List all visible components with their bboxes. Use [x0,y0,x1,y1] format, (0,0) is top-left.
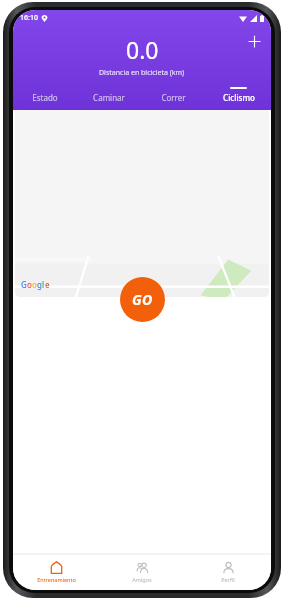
staticText: G [21,279,27,290]
staticText: Distancia en bicicleta (km) [99,68,185,78]
staticText: Estado [32,92,58,103]
other: Perfil [222,561,235,574]
button[interactable]: Estado [13,84,77,110]
staticText: Ciclismo [223,92,255,103]
staticText: Entrenamiento [37,576,76,583]
button[interactable]: Ciclismo [206,84,271,110]
button[interactable]: Entrenamiento [13,554,99,590]
staticText: Caminar [93,92,125,103]
staticText: GO [132,290,153,309]
button[interactable]: Añadir [243,30,265,52]
staticText: o [32,279,37,290]
button[interactable]: GO [120,277,165,322]
button[interactable]: Perfil [185,554,271,590]
staticText: Correr [161,92,186,103]
staticText: 0.0 [126,34,159,65]
button[interactable]: Amigos [99,554,185,590]
button[interactable]: Correr [141,84,206,110]
staticText: Amigos [132,576,152,583]
button[interactable]: Caminar [77,84,141,110]
staticText: Perfil [221,576,235,583]
other: Amigos [136,561,149,574]
other: Entrenamiento [50,561,63,574]
staticText: g [37,279,42,290]
staticText: o [27,279,32,290]
staticText: e [45,279,50,290]
button[interactable]: Mapa [15,110,269,297]
staticText: l [42,279,45,290]
staticText: 16:10 [20,13,38,23]
